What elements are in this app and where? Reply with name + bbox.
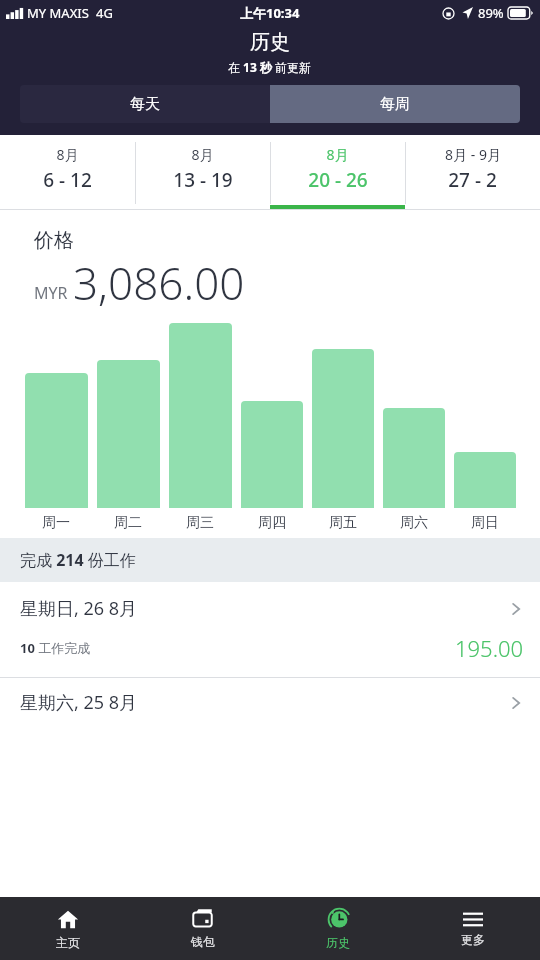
- staticText: MY MAXIS: [27, 4, 89, 22]
- staticText: 4G: [96, 4, 113, 22]
- staticText: 每周: [380, 95, 410, 114]
- staticText: 周四: [258, 514, 286, 532]
- button[interactable]: 完成 214 份工作: [0, 538, 540, 582]
- button[interactable]: 主页: [0, 897, 135, 960]
- staticText: 上午10:34: [240, 4, 300, 22]
- staticText: 6 - 12: [43, 167, 92, 193]
- staticText: 在 13 秒 前更新: [228, 59, 312, 75]
- staticText: 星期六, 25 8月: [20, 690, 508, 715]
- staticText: 价格: [34, 228, 74, 253]
- staticText: 8月: [326, 145, 349, 164]
- staticText: 历史: [250, 30, 290, 55]
- staticText: 13 - 19: [173, 167, 233, 193]
- button[interactable]: 8月: [270, 135, 405, 210]
- button[interactable]: 星期六, 25 8月: [0, 678, 540, 720]
- staticText: 周三: [186, 514, 214, 532]
- button[interactable]: 历史: [270, 897, 405, 960]
- staticText: 主页: [56, 935, 80, 950]
- staticText: 27 - 2: [448, 167, 497, 193]
- staticText: 更多: [461, 932, 485, 947]
- button[interactable]: 星期日, 26 8月: [0, 582, 540, 677]
- button[interactable]: 更多: [405, 897, 540, 960]
- staticText: 周日: [471, 514, 499, 532]
- button[interactable]: 每天: [20, 85, 270, 123]
- button[interactable]: 钱包: [135, 897, 270, 960]
- staticText: 89%: [478, 4, 504, 22]
- button[interactable]: 8月: [135, 135, 270, 210]
- staticText: 10 工作完成: [20, 639, 455, 657]
- staticText: 钱包: [191, 934, 215, 949]
- staticText: 8月: [56, 145, 79, 164]
- button[interactable]: 每周: [270, 85, 520, 123]
- staticText: 20 - 26: [308, 167, 368, 193]
- staticText: 周二: [114, 514, 142, 532]
- staticText: MYR: [34, 282, 68, 304]
- staticText: 周六: [400, 514, 428, 532]
- staticText: 8月: [191, 145, 214, 164]
- staticText: 历史: [326, 935, 350, 950]
- staticText: 星期日, 26 8月: [20, 596, 508, 621]
- staticText: 每天: [130, 95, 160, 114]
- button[interactable]: 8月 - 9月: [405, 135, 540, 210]
- staticText: 195.00: [455, 633, 524, 663]
- staticText: 完成 214 份工作: [20, 549, 136, 571]
- button[interactable]: 8月: [0, 135, 135, 210]
- staticText: 3,086.00: [73, 253, 245, 313]
- staticText: 8月 - 9月: [445, 145, 501, 164]
- staticText: 周一: [42, 514, 70, 532]
- staticText: 周五: [329, 514, 357, 532]
